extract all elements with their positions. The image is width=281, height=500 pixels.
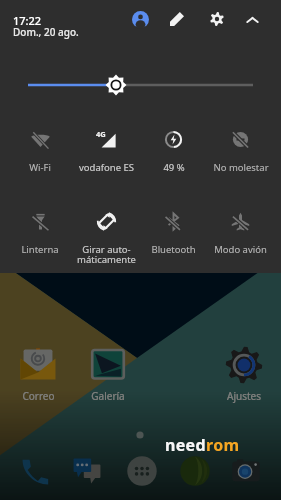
button[interactable]: Camera — [230, 455, 262, 487]
staticText: 17:22 — [13, 13, 42, 28]
button[interactable]: No molestar — [207, 130, 274, 174]
button[interactable]: 49 % — [140, 130, 207, 174]
button[interactable]: Ajustes — [224, 346, 264, 403]
staticText: Linterna — [21, 243, 59, 256]
button[interactable]: Apps — [126, 455, 158, 487]
button[interactable]: Brightness — [0, 70, 281, 100]
button[interactable]: Messages — [71, 454, 103, 486]
button[interactable]: Collapse — [238, 6, 266, 34]
staticText: need — [165, 434, 206, 456]
button[interactable]: Wi-Fi — [7, 130, 73, 174]
staticText: Girar auto- máticamente — [77, 243, 136, 266]
staticText: Correo — [22, 389, 55, 403]
staticText: Galería — [91, 389, 125, 403]
button[interactable]: Phone — [20, 454, 52, 486]
button[interactable]: Edit — [163, 5, 191, 33]
button[interactable]: 4G — [73, 130, 140, 174]
staticText: Dom., 20 ago. — [13, 25, 79, 39]
button[interactable]: Bluetooth — [140, 212, 207, 256]
staticText: No molestar — [213, 161, 269, 174]
button[interactable]: Linterna — [7, 212, 73, 256]
button[interactable]: Correo — [18, 346, 58, 403]
staticText: Modo avión — [214, 243, 267, 256]
staticText: 4G — [96, 129, 106, 139]
staticText: Ajustes — [227, 389, 261, 403]
button[interactable]: Melon — [179, 455, 211, 487]
staticText: vodafone ES — [79, 161, 134, 174]
button[interactable]: User account — [126, 5, 154, 33]
staticText: 49 % — [163, 161, 185, 174]
staticText: Bluetooth — [151, 243, 196, 256]
button[interactable]: Girar auto- máticamente — [73, 212, 140, 266]
button[interactable]: Galería — [88, 346, 128, 403]
staticText: rom — [206, 434, 240, 456]
button[interactable]: Modo avión — [207, 212, 274, 256]
staticText: Wi-Fi — [29, 161, 51, 174]
button[interactable]: Settings — [203, 5, 231, 33]
